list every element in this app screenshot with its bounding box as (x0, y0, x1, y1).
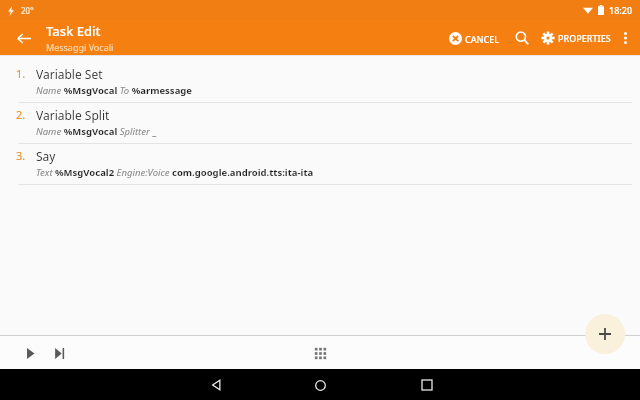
button[interactable]: More options (614, 27, 636, 49)
button[interactable]: Add action (585, 314, 625, 354)
button[interactable]: Recent apps (414, 372, 440, 398)
button[interactable]: 3. (0, 144, 640, 184)
staticText: Messaggi Vocali (46, 41, 114, 53)
button[interactable]: CANCEL (445, 28, 504, 49)
button[interactable]: Back (203, 372, 229, 398)
staticText: Name %MsgVocal To %armessage (36, 84, 193, 97)
staticText: Task Edit (46, 22, 101, 40)
button[interactable]: PROPERTIES (538, 27, 614, 49)
staticText: 1. (16, 66, 36, 81)
button[interactable]: Home (307, 372, 333, 398)
staticText: 3. (16, 148, 36, 163)
button[interactable]: Play (18, 341, 42, 365)
staticText: PROPERTIES (558, 32, 611, 44)
staticText: 2. (16, 107, 36, 122)
staticText: Variable Split (36, 107, 110, 123)
staticText: Text %MsgVocal2 Engine:Voice com.google.… (36, 166, 314, 179)
button[interactable]: Back (10, 25, 36, 51)
staticText: 18:20 (609, 4, 633, 16)
button[interactable]: Search (510, 26, 534, 50)
staticText: Variable Set (36, 66, 103, 82)
button[interactable]: Step (47, 341, 71, 365)
staticText: Name %MsgVocal Splitter _ (36, 125, 157, 138)
staticText: Say (36, 148, 56, 164)
staticText: 20° (21, 5, 34, 16)
staticText: CANCEL (465, 33, 500, 45)
button[interactable]: 1. (0, 62, 640, 102)
button[interactable]: 2. (0, 103, 640, 143)
button[interactable]: Grid menu (307, 340, 333, 366)
